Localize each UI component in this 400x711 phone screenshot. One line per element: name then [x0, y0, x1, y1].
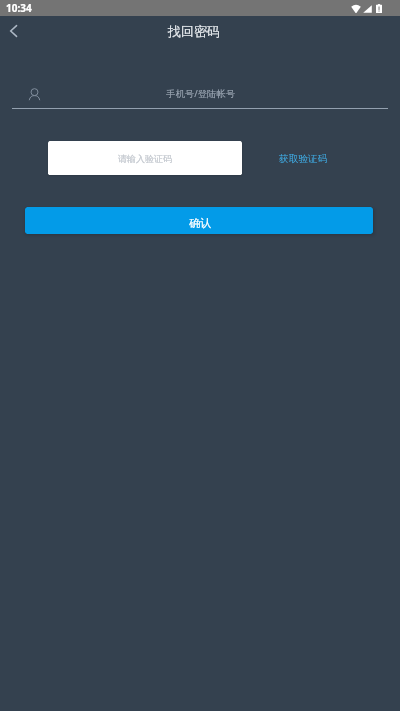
button[interactable]: Back: [0, 18, 26, 44]
staticText: 确认: [189, 216, 211, 230]
staticText: 10:34: [6, 1, 32, 15]
staticText: 手机号/登陆帐号: [166, 87, 236, 100]
button[interactable]: 获取验证码: [274, 146, 333, 170]
staticText: 找回密码: [168, 23, 220, 39]
button[interactable]: 手机号/登陆帐号: [0, 79, 400, 108]
staticText: 请输入验证码: [118, 153, 172, 164]
button[interactable]: 请输入验证码: [48, 141, 242, 175]
staticText: 获取验证码: [279, 153, 328, 165]
button[interactable]: 确认: [25, 207, 373, 234]
